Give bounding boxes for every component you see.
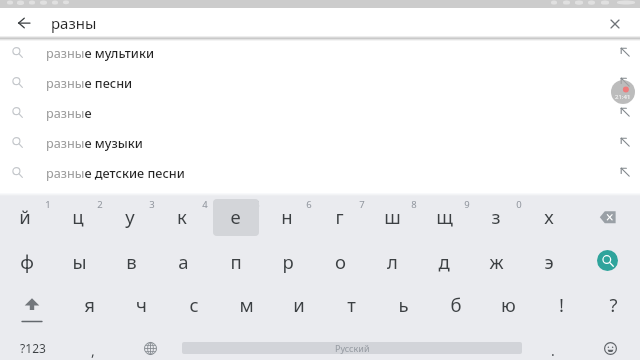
button[interactable]: х [525,199,573,233]
staticText: у [125,204,135,229]
button[interactable]: л [368,244,416,278]
staticText: разные песни [46,74,133,91]
button[interactable]: Clear search [602,11,627,36]
button[interactable]: Back [11,10,37,36]
button[interactable]: ь [379,287,427,321]
staticText: 3 [149,198,155,211]
button[interactable]: Screen recorder [611,80,635,104]
staticText: щ [436,204,453,229]
staticText: ю [501,292,516,317]
button[interactable]: Insert suggestion [613,100,637,124]
button[interactable]: Backspace [596,208,620,228]
button[interactable]: к [158,199,206,233]
button[interactable]: ю [484,287,532,321]
button[interactable]: Insert suggestion [613,130,637,154]
button[interactable]: п [212,244,260,278]
button[interactable]: Insert suggestion [613,70,637,94]
staticText: с [189,292,199,317]
staticText: л [387,249,398,274]
button[interactable]: й [1,199,49,233]
staticText: 1 [45,198,51,211]
button[interactable]: о [316,244,364,278]
button[interactable]: у [106,199,154,233]
button[interactable]: м [222,287,270,321]
button[interactable]: разные детские песни [0,157,640,187]
button[interactable]: ф [3,244,51,278]
staticText: 4 [202,198,208,211]
staticText: разные музыки [46,134,143,151]
staticText: 8 [411,198,417,211]
staticText: ц [72,204,84,229]
button[interactable]: Search [597,250,618,271]
staticText: р [282,249,294,274]
button[interactable] [213,199,259,236]
button[interactable]: ! [537,287,585,321]
button[interactable]: ы [55,244,103,278]
staticText: в [126,249,137,274]
staticText: 5 [254,198,260,211]
staticText: 2 [97,198,103,211]
button[interactable]: д [420,244,468,278]
button[interactable]: Русский [182,342,522,354]
staticText: э [544,249,554,274]
staticText: ч [136,292,147,317]
button[interactable]: с [170,287,218,321]
button[interactable]: т [327,287,375,321]
staticText: ш [384,204,401,229]
button[interactable]: разные песни [0,67,640,97]
staticText: разные мультики [46,44,155,61]
button[interactable]: г [315,199,363,233]
button[interactable]: Change language [138,336,163,360]
staticText: ?123 [20,340,46,356]
button[interactable]: ч [117,287,165,321]
button[interactable]: р [264,244,312,278]
button[interactable]: ш [368,199,416,233]
button[interactable]: з [472,199,520,233]
button[interactable]: Insert suggestion [613,160,637,184]
button[interactable]: разные музыки [0,127,640,157]
button[interactable]: ц [54,199,102,233]
staticText: ф [20,249,34,274]
staticText: з [491,204,501,229]
staticText: н [281,204,293,229]
button[interactable]: щ [420,199,468,233]
staticText: 9 [464,198,470,211]
staticText: ы [72,249,87,274]
button[interactable]: я [65,287,113,321]
button[interactable]: ? [589,287,637,321]
staticText: разные детские песни [46,164,185,181]
staticText: 7 [359,198,365,211]
staticText: я [84,292,95,317]
staticText: разные [46,104,92,121]
button[interactable]: Shift [12,292,52,326]
button[interactable]: в [107,244,155,278]
button[interactable]: н [263,199,311,233]
staticText: ь [398,292,409,317]
staticText: й [19,204,31,229]
staticText: к [177,204,187,229]
button[interactable]: Insert suggestion [613,40,637,64]
staticText: м [239,292,254,317]
staticText: Русский [335,342,370,354]
staticText: разны [51,13,97,33]
staticText: ! [559,292,564,317]
button[interactable]: э [525,244,573,278]
staticText: г [335,204,344,229]
staticText: , [91,341,95,359]
staticText: о [335,249,346,274]
button[interactable]: и [275,287,323,321]
button[interactable]: ж [472,244,520,278]
staticText: и [293,292,305,317]
staticText: т [347,292,356,317]
staticText: . [551,341,555,359]
staticText: п [230,249,242,274]
button[interactable]: разные [0,97,640,127]
button[interactable]: а [159,244,207,278]
staticText: 6 [306,198,312,211]
button[interactable]: б [432,287,480,321]
staticText: ж [489,249,504,274]
button[interactable]: Emoji [598,336,623,360]
button[interactable]: разные мультики [0,37,640,67]
staticText: ? [609,292,618,317]
button[interactable]: е [211,199,259,233]
